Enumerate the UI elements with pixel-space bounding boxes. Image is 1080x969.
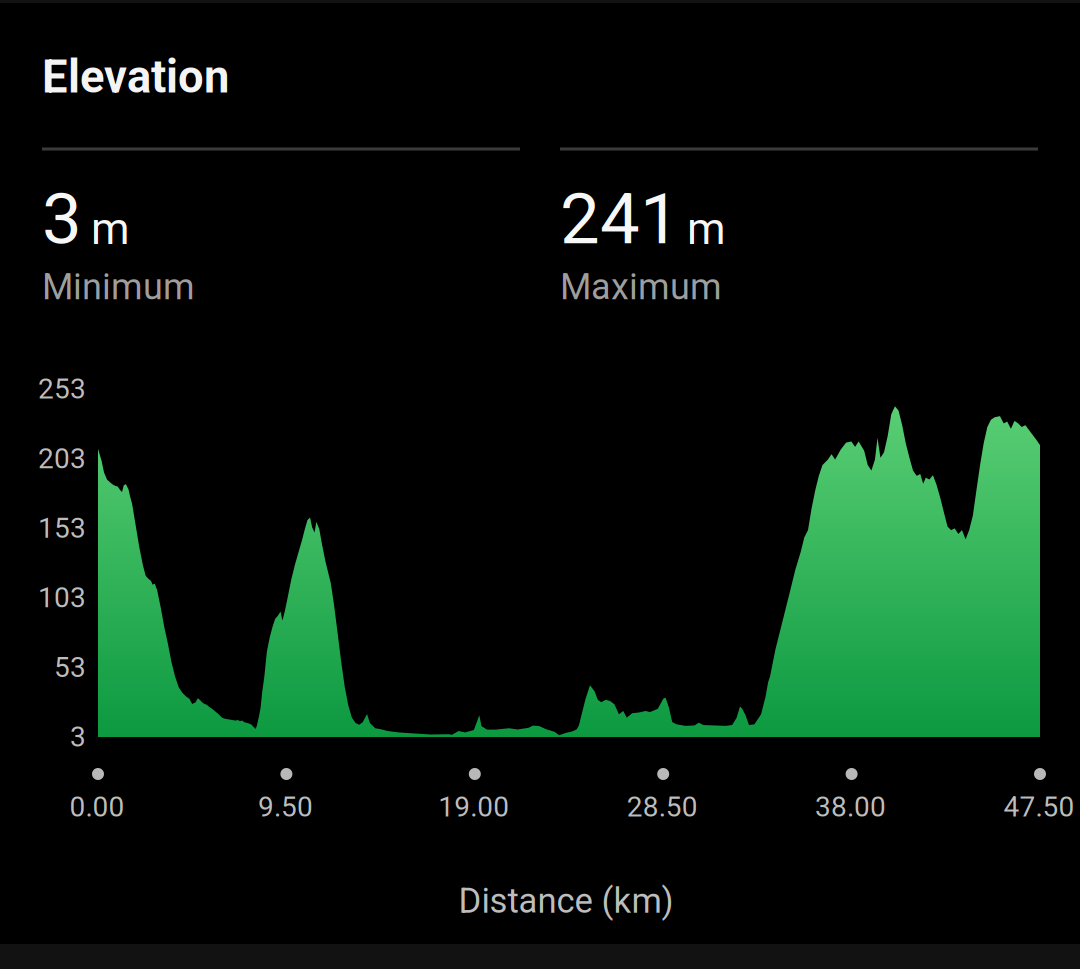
- staticText: 9.50: [258, 791, 313, 823]
- button[interactable]: Elevation profile chart: [0, 0, 1080, 969]
- staticText: 28.50: [627, 791, 698, 823]
- staticText: 241: [560, 178, 680, 260]
- staticText: 53: [54, 651, 86, 684]
- staticText: Elevation: [42, 50, 229, 103]
- staticText: 19.00: [438, 791, 509, 823]
- staticText: Maximum: [560, 266, 722, 308]
- staticText: 153: [38, 512, 86, 545]
- staticText: 3: [42, 178, 82, 260]
- staticText: 103: [38, 581, 86, 614]
- staticText: 47.50: [1003, 791, 1074, 823]
- staticText: Minimum: [42, 266, 195, 308]
- staticText: m: [687, 203, 726, 255]
- staticText: 3: [70, 721, 86, 753]
- staticText: 253: [38, 373, 86, 405]
- button[interactable]: 3: [0, 0, 1080, 969]
- staticText: 38.00: [815, 791, 886, 823]
- staticText: Distance (km): [458, 881, 673, 921]
- staticText: m: [91, 203, 130, 255]
- staticText: 203: [38, 442, 86, 475]
- button[interactable]: 241: [0, 0, 1080, 969]
- staticText: 0.00: [69, 791, 124, 823]
